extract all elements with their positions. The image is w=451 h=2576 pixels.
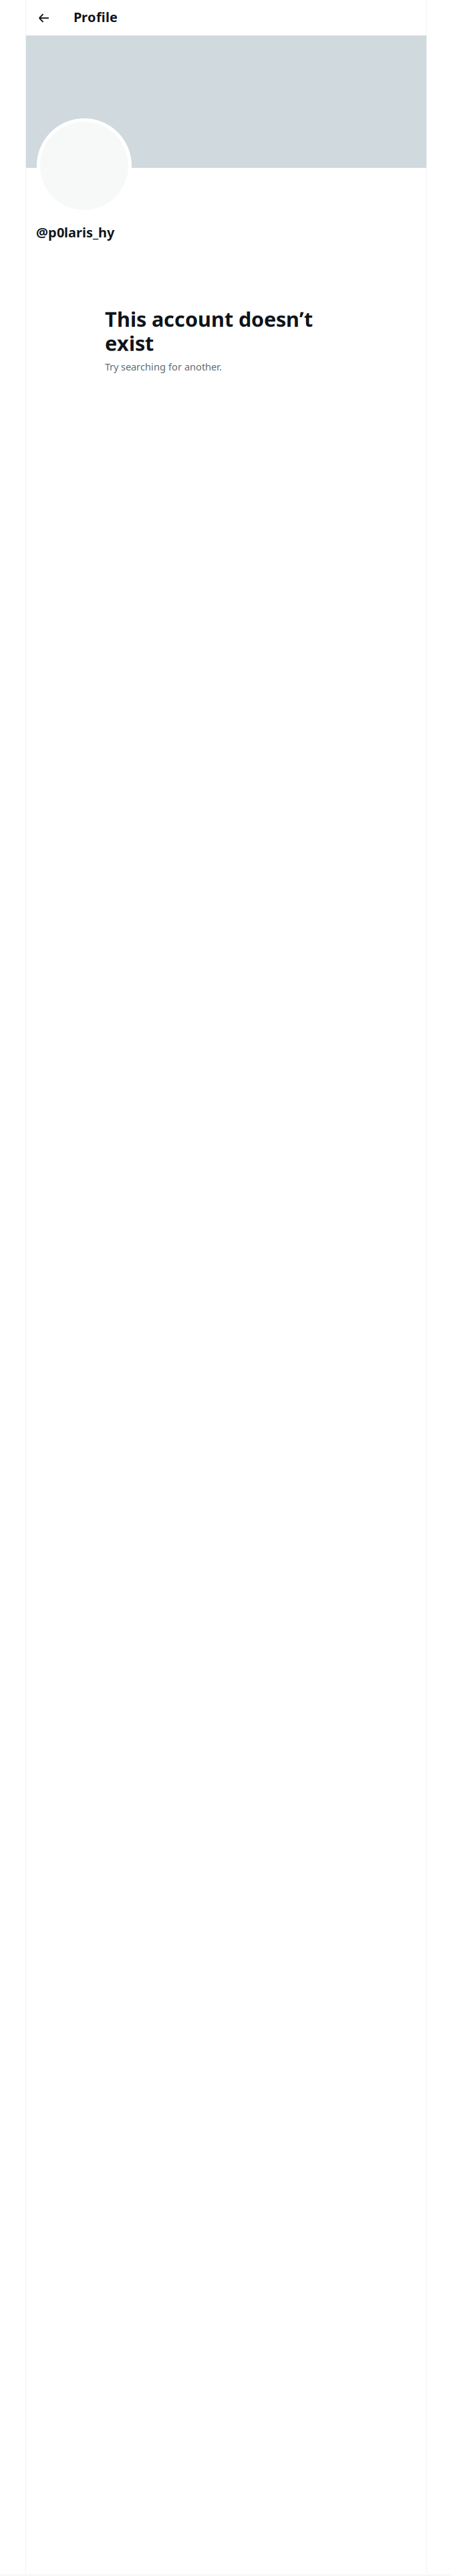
staticText: @p0laris_hy (36, 223, 114, 241)
staticText: This account doesn’t (105, 305, 313, 333)
staticText: Profile (73, 8, 118, 26)
staticText: exist (105, 329, 154, 357)
button[interactable]: Back (26, 0, 52, 35)
staticText: Try searching for another. (105, 360, 222, 373)
